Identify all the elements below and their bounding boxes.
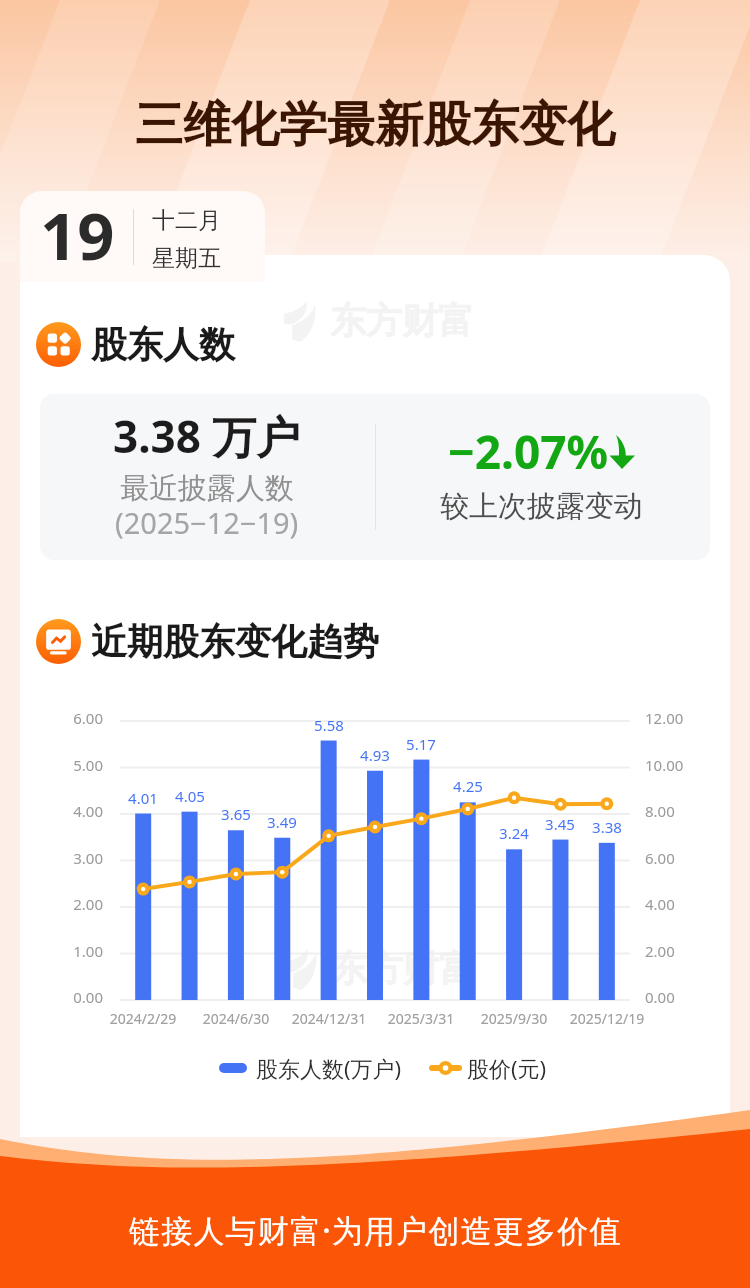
staticText: 2024/2/29	[83, 1009, 203, 1028]
staticText: 3.45	[530, 814, 590, 834]
staticText: 东方财富	[331, 946, 475, 991]
button[interactable]: 近期股东变化趋势	[36, 619, 379, 664]
staticText: 6.00	[33, 708, 103, 728]
staticText: 4.25	[438, 776, 498, 796]
button[interactable]: 股东人数	[36, 322, 235, 367]
staticText: 股价(元)	[467, 1053, 547, 1083]
staticText: 链接人与财富·为用户创造更多价值	[129, 1209, 622, 1251]
staticText: 3.65	[206, 804, 266, 824]
staticText: 2.00	[33, 894, 103, 914]
staticText: (2025−12−19)	[115, 503, 299, 542]
staticText: 股东人数	[91, 322, 235, 367]
staticText: 0.00	[645, 987, 675, 1007]
staticText: 十二月	[152, 206, 221, 235]
staticText: 2025/12/19	[547, 1009, 667, 1028]
staticText: 4.05	[160, 786, 220, 806]
staticText: 19	[40, 191, 115, 279]
staticText: 8.00	[645, 801, 675, 821]
staticText: 股东人数(万户)	[256, 1053, 402, 1083]
staticText: 5.00	[33, 755, 103, 775]
staticText: 2025/9/30	[454, 1009, 574, 1028]
staticText: 4.93	[345, 745, 405, 765]
staticText: 4.00	[645, 894, 675, 914]
staticText: 星期五	[152, 244, 221, 273]
button[interactable]: 19	[20, 191, 265, 282]
staticText: 3.38 万户	[113, 406, 301, 466]
staticText: 3.49	[252, 812, 312, 832]
staticText: 4.00	[33, 801, 103, 821]
staticText: 2.00	[645, 941, 675, 961]
staticText: 5.17	[391, 734, 451, 754]
staticText: 4.01	[113, 788, 173, 808]
staticText: 5.58	[299, 715, 359, 735]
staticText: 6.00	[645, 848, 675, 868]
staticText: 2024/12/31	[269, 1009, 389, 1028]
staticText: 3.00	[33, 848, 103, 868]
staticText: 2025/3/31	[361, 1009, 481, 1028]
staticText: 最近披露人数	[120, 470, 294, 507]
staticText: 2024/6/30	[176, 1009, 296, 1028]
staticText: 三维化学最新股东变化	[0, 95, 750, 155]
staticText: 近期股东变化趋势	[91, 619, 379, 664]
staticText: −2.07%	[448, 420, 609, 483]
staticText: 1.00	[33, 941, 103, 961]
staticText: 3.38	[577, 817, 637, 837]
staticText: 12.00	[645, 708, 684, 728]
staticText: 0.00	[33, 987, 103, 1007]
staticText: 东方财富	[330, 298, 474, 343]
staticText: 10.00	[645, 755, 684, 775]
staticText: 3.24	[484, 823, 544, 843]
staticText: 较上次披露变动	[440, 488, 643, 525]
